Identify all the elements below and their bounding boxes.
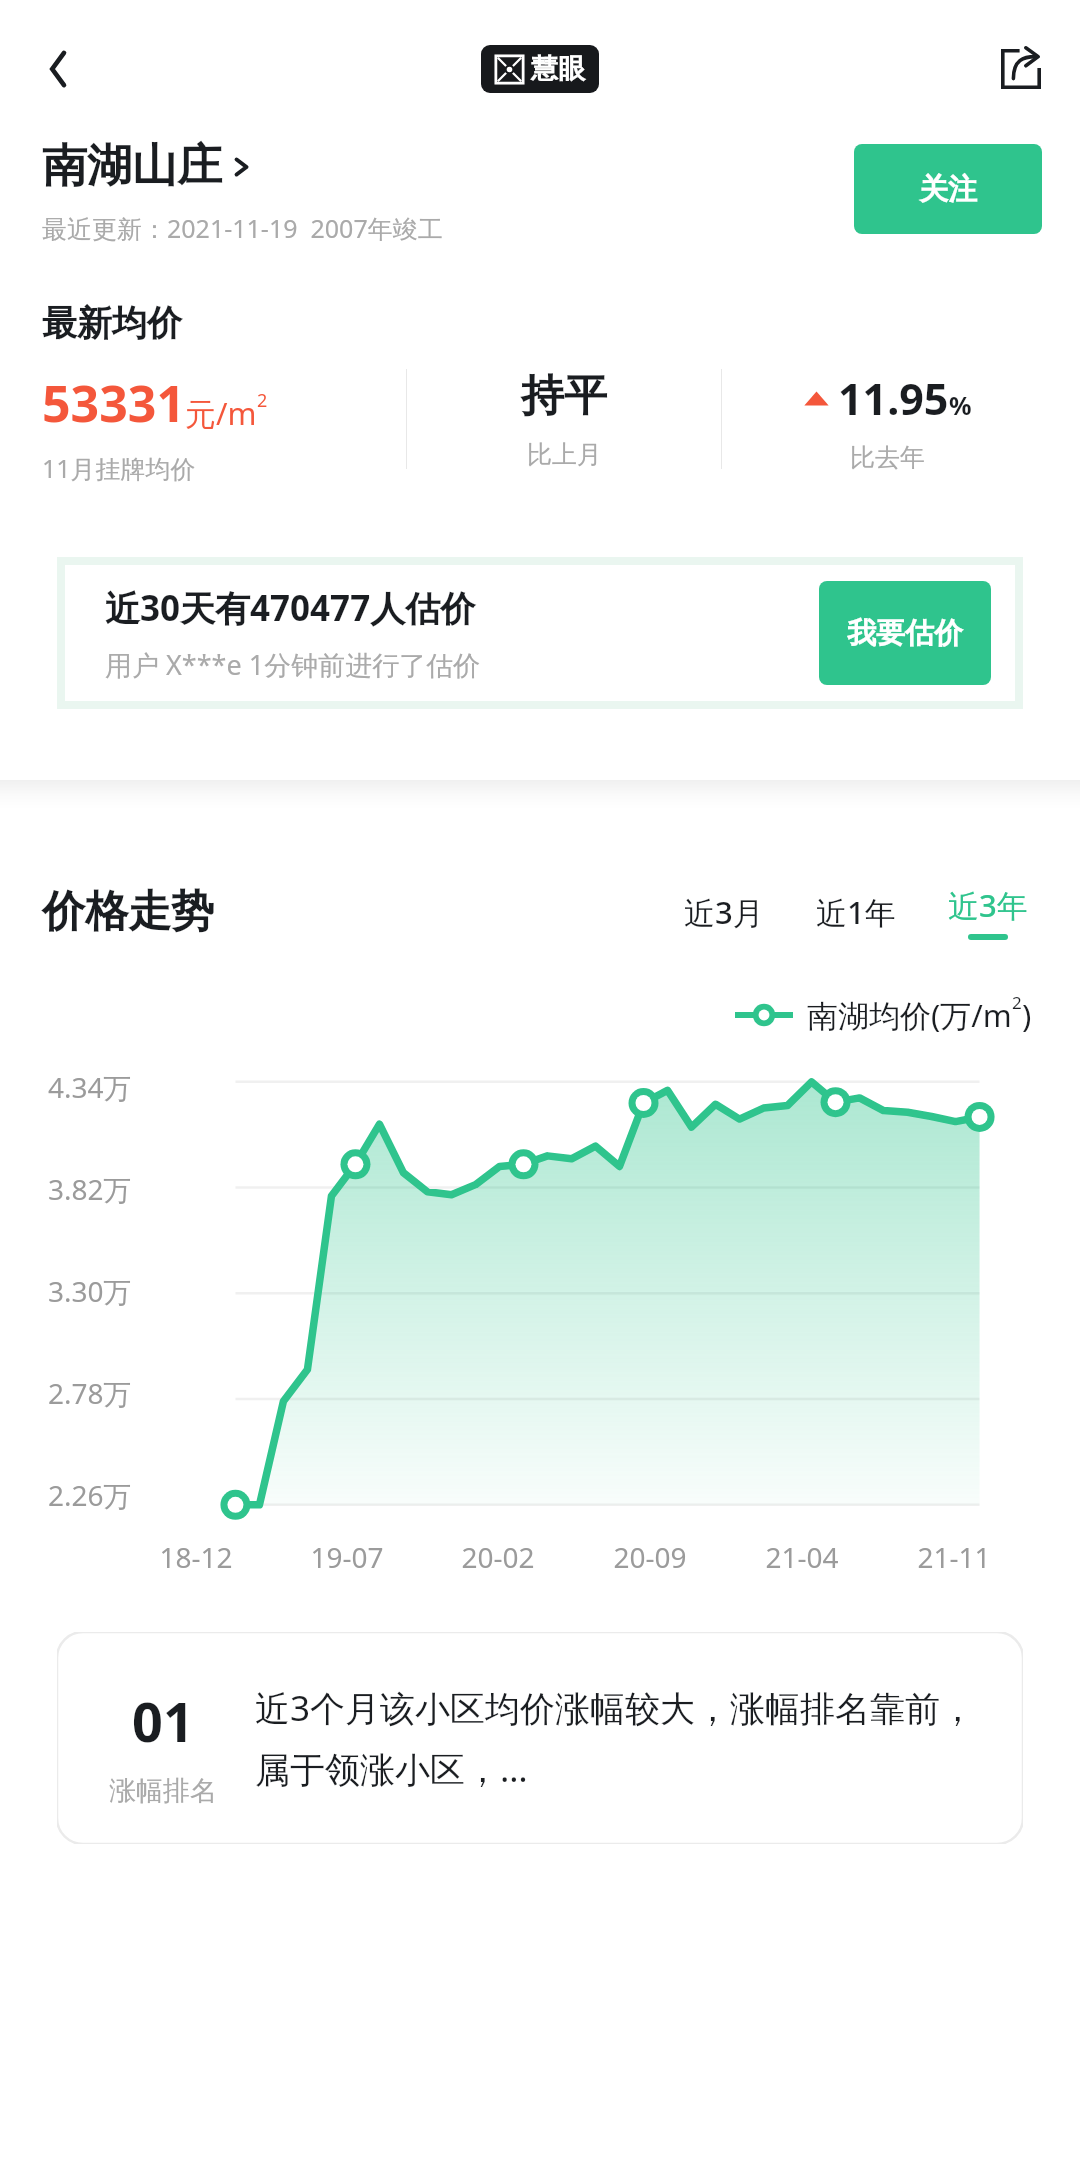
staticText: 近3年 — [948, 884, 1028, 926]
staticText: % — [949, 388, 972, 422]
staticText: 近3月 — [684, 891, 764, 933]
button[interactable]: 关注 — [854, 144, 1042, 234]
staticText: 11.95 — [838, 369, 949, 428]
staticText: 南湖均价(万/m — [807, 994, 1012, 1036]
staticText: 18-12 — [159, 1538, 233, 1576]
staticText: 涨幅排名 — [109, 1774, 217, 1808]
button[interactable]: 近30天有470477人估价 — [65, 565, 1015, 701]
button[interactable]: Share — [990, 38, 1052, 100]
staticText: 53331 — [42, 369, 185, 437]
staticText: 价格走势 — [42, 885, 214, 939]
staticText: 关注 — [919, 171, 977, 208]
staticText: 20-02 — [461, 1538, 535, 1576]
staticText: 持平 — [521, 369, 607, 423]
staticText: 2.26万 — [48, 1476, 132, 1514]
button[interactable]: 慧眼 — [481, 45, 599, 93]
button[interactable]: Back — [24, 38, 86, 100]
staticText: 2 — [1012, 991, 1022, 1014]
staticText: 比去年 — [850, 442, 925, 473]
staticText: 21-11 — [917, 1538, 991, 1576]
staticText: 比上月 — [527, 439, 602, 470]
staticText: 11月挂牌均价 — [42, 451, 196, 485]
button[interactable]: 近3年 — [940, 876, 1036, 948]
staticText: 我要估价 — [847, 615, 963, 652]
staticText: 3.30万 — [48, 1272, 132, 1310]
staticText: 01 — [132, 1684, 194, 1758]
staticText: 2.78万 — [48, 1374, 132, 1412]
staticText: 近3个月该小区均价涨幅较大，涨幅排名靠前，属于领涨小区，… — [255, 1684, 1001, 1792]
button[interactable]: 近1年 — [808, 883, 904, 941]
staticText: 19-07 — [310, 1538, 384, 1576]
button[interactable]: 南湖山庄 — [42, 138, 251, 195]
staticText: 近1年 — [816, 891, 896, 933]
staticText: 20-09 — [613, 1538, 687, 1576]
staticText: 3.82万 — [48, 1170, 132, 1208]
staticText: 慧眼 — [531, 52, 585, 86]
staticText: ) — [1022, 994, 1032, 1036]
staticText: 近30天有470477人估价 — [105, 584, 476, 632]
staticText: 用户 X***e 1分钟前进行了估价 — [105, 646, 481, 683]
button[interactable]: 近3月 — [676, 883, 772, 941]
button[interactable]: 我要估价 — [819, 581, 991, 685]
staticText: 最近更新：2021-11-19 2007年竣工 — [42, 211, 443, 245]
staticText: 最新均价 — [42, 301, 182, 345]
button[interactable]: 01 — [57, 1632, 1023, 1844]
staticText: 南湖山庄 — [42, 138, 222, 195]
staticText: 21-04 — [765, 1538, 839, 1576]
staticText: 元/m — [185, 392, 257, 434]
staticText: 4.34万 — [48, 1068, 132, 1106]
staticText: 2 — [257, 388, 268, 413]
